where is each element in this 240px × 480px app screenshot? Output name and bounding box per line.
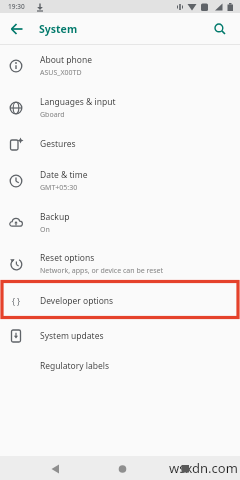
staticText: Regulatory labels — [40, 360, 110, 372]
button[interactable]: Regulatory labels — [0, 353, 240, 379]
staticText: Backup — [40, 211, 70, 223]
button[interactable] — [6, 18, 28, 40]
button[interactable]: System updates — [0, 319, 240, 353]
staticText: 19:30 — [8, 2, 25, 11]
button[interactable]: Languages & input — [0, 87, 240, 128]
staticText: ASUS_X00TD — [40, 68, 82, 78]
staticText: Languages & input — [40, 96, 116, 108]
staticText: wsxdn.com — [169, 459, 238, 477]
staticText: Gboard — [40, 110, 65, 120]
staticText: About phone — [40, 54, 93, 66]
button[interactable]: Reset options — [0, 244, 240, 283]
staticText: GMT+05:30 — [40, 183, 78, 193]
button[interactable]: { } — [0, 283, 240, 319]
staticText: Gestures — [40, 138, 76, 150]
button[interactable]: Gestures — [0, 128, 240, 159]
button[interactable] — [210, 19, 230, 39]
button[interactable]: About phone — [0, 45, 240, 87]
button[interactable]: Date & time — [0, 159, 240, 202]
staticText: { } — [12, 296, 21, 307]
staticText: Developer options — [40, 295, 114, 307]
staticText: System — [39, 22, 78, 36]
staticText: Reset options — [40, 252, 95, 264]
staticText: Network, apps, or device can be reset — [40, 266, 164, 276]
staticText: On — [40, 225, 50, 235]
button[interactable]: Backup — [0, 202, 240, 244]
staticText: Date & time — [40, 169, 88, 181]
staticText: System updates — [40, 330, 104, 342]
